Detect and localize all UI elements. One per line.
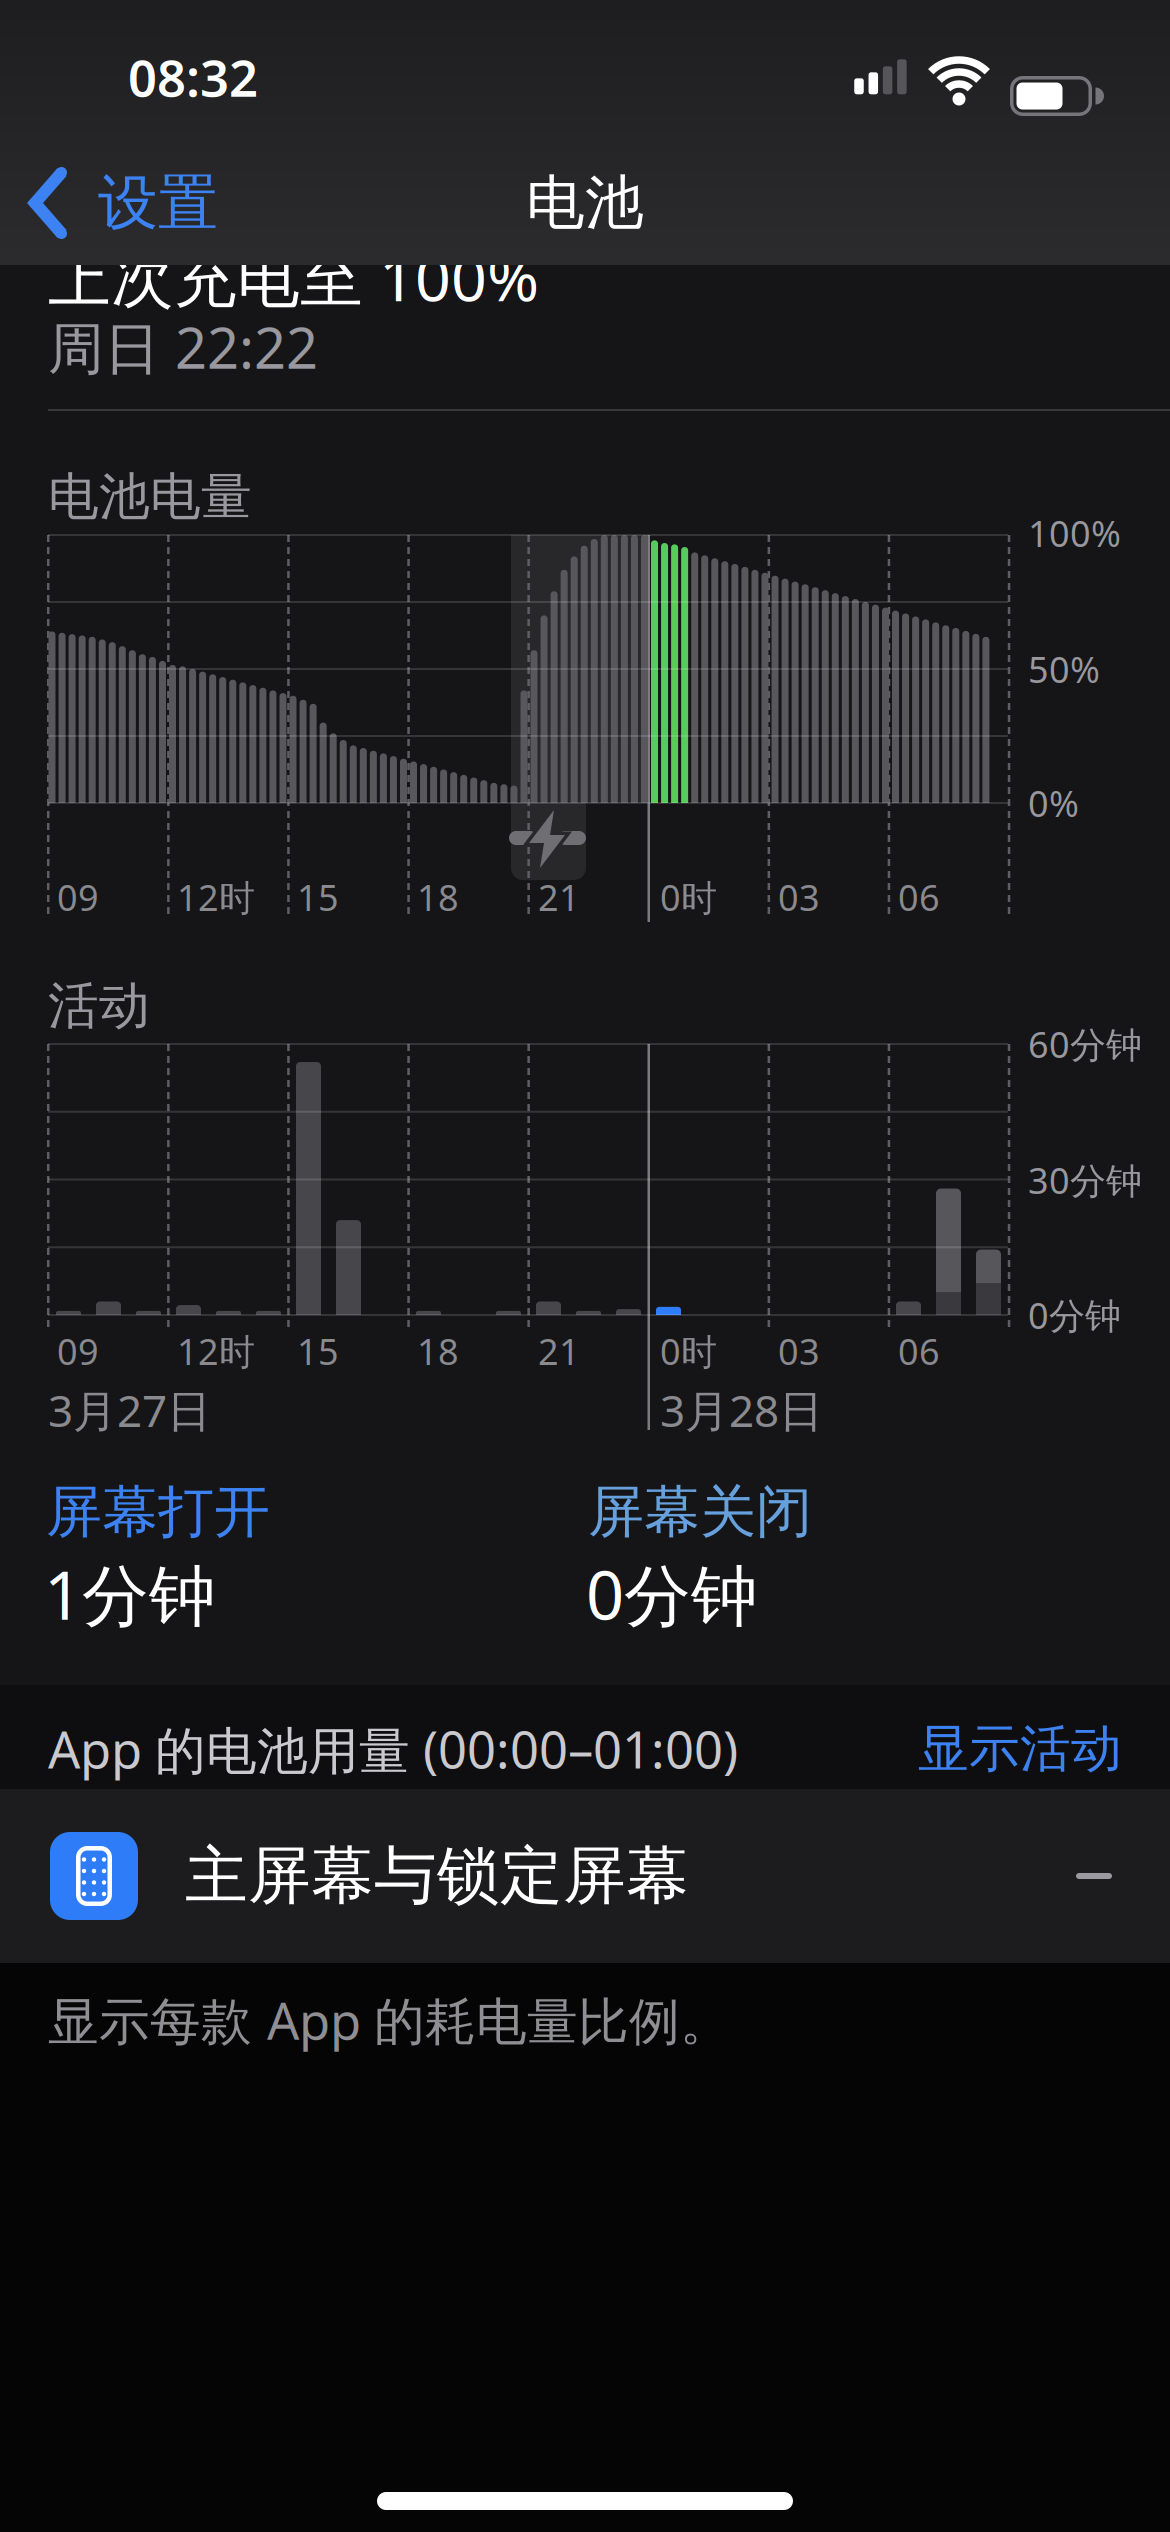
staticText: 显示活动 <box>918 1718 1122 1780</box>
staticText: 0分钟 <box>1028 1291 1121 1339</box>
staticText: 21 <box>538 873 580 921</box>
staticText: 03 <box>778 873 820 921</box>
staticText: 15 <box>297 873 339 921</box>
staticText: 0时 <box>660 1327 717 1375</box>
staticText: 电池 <box>526 167 644 239</box>
staticText: 0分钟 <box>586 1550 758 1638</box>
staticText: 0% <box>1028 779 1079 827</box>
staticText: 主屏幕与锁定屏幕 <box>185 1837 689 1914</box>
staticText: 周日 22:22 <box>48 310 318 384</box>
staticText: 18 <box>417 873 459 921</box>
staticText: 21 <box>538 1327 580 1375</box>
staticText: 03 <box>778 1327 820 1375</box>
staticText: 30分钟 <box>1028 1156 1142 1204</box>
staticText: 活动 <box>48 975 150 1037</box>
staticText: 设置 <box>98 166 218 240</box>
staticText: App 的电池用量 (00:00–01:00) <box>48 1715 738 1783</box>
staticText: 100% <box>1028 509 1121 557</box>
staticText: 06 <box>898 873 940 921</box>
staticText: 60分钟 <box>1028 1020 1142 1068</box>
staticText: 12时 <box>177 1327 255 1375</box>
button[interactable]: 主屏幕与锁定屏幕 <box>0 1789 1170 1963</box>
staticText: 电池电量 <box>48 466 252 528</box>
staticText: 1分钟 <box>44 1550 216 1638</box>
staticText: 09 <box>57 1327 99 1375</box>
staticText: 3月27日 <box>48 1381 211 1439</box>
staticText: 18 <box>417 1327 459 1375</box>
staticText: 屏幕打开 <box>46 1478 270 1546</box>
staticText: 12时 <box>177 873 255 921</box>
staticText: 3月28日 <box>660 1381 823 1439</box>
staticText: 50% <box>1028 645 1100 693</box>
staticText: 屏幕关闭 <box>588 1478 812 1546</box>
button[interactable]: 显示活动 <box>918 1718 1122 1780</box>
staticText: 上次充电至 100% <box>48 235 539 319</box>
button[interactable]: 返回设置 <box>28 153 348 253</box>
staticText: 显示每款 App 的耗电量比例。 <box>48 1986 731 2054</box>
staticText: 06 <box>898 1327 940 1375</box>
staticText: 15 <box>297 1327 339 1375</box>
staticText: 09 <box>57 873 99 921</box>
staticText: 08:32 <box>128 43 258 111</box>
staticText: 0时 <box>660 873 717 921</box>
